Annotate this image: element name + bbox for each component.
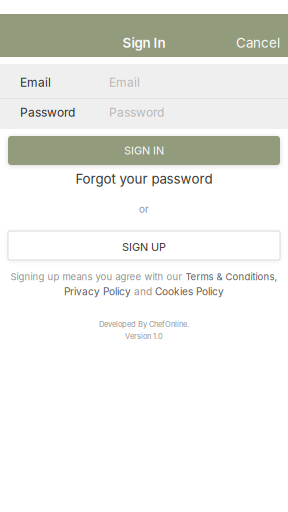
staticText: Sign In (122, 35, 165, 51)
staticText: Password (20, 105, 75, 119)
staticText: Email (109, 75, 140, 89)
button[interactable]: Cancel (224, 28, 288, 58)
staticText: SIGN UP (122, 240, 166, 254)
staticText: SIGN IN (124, 144, 164, 157)
staticText: Privacy Policy (64, 285, 131, 298)
staticText: Terms & Conditions, (185, 271, 277, 282)
staticText: Password (109, 105, 164, 119)
button[interactable]: Email (0, 64, 288, 98)
staticText: Cookies Policy (155, 285, 224, 298)
button[interactable]: Privacy Policy (64, 285, 131, 298)
button[interactable]: Cookies Policy (155, 285, 224, 298)
button[interactable]: Forgot your password (0, 167, 288, 191)
staticText: Cancel (236, 35, 280, 51)
staticText: and (131, 285, 155, 298)
staticText: Email (20, 75, 51, 89)
button[interactable]: SIGN IN (8, 136, 280, 165)
staticText: or (139, 203, 149, 215)
staticText: Developed By ChefOnline. (99, 320, 189, 329)
button[interactable]: Terms & Conditions, (185, 271, 277, 282)
button[interactable]: SIGN UP (8, 231, 280, 260)
button[interactable]: Password (0, 99, 288, 129)
staticText: Forgot your password (75, 171, 212, 187)
staticText: Version 1.0 (125, 332, 163, 341)
staticText: Signing up means you agree with our (10, 271, 185, 282)
